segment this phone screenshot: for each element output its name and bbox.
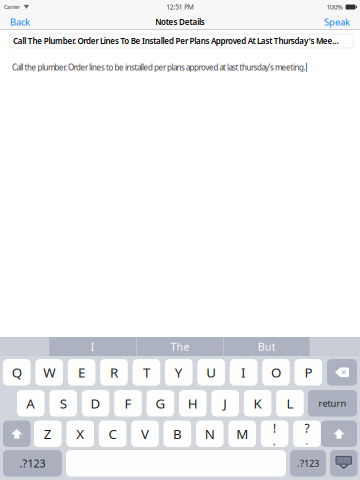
staticText: B <box>173 425 182 443</box>
staticText: Q <box>12 363 22 381</box>
button[interactable]: .?123 <box>290 450 326 476</box>
button[interactable]: I <box>230 359 257 385</box>
button[interactable]: O <box>262 359 290 385</box>
staticText: C <box>109 425 117 443</box>
staticText: ! <box>273 420 276 436</box>
button[interactable]: B <box>164 420 191 447</box>
staticText: A <box>26 394 35 412</box>
button[interactable]: A <box>17 390 45 416</box>
staticText: .?123 <box>297 457 319 469</box>
button[interactable]: R <box>100 359 128 385</box>
staticText: W <box>43 363 55 381</box>
button[interactable]: L <box>276 390 304 416</box>
button[interactable]: Y <box>165 359 193 385</box>
staticText: I <box>241 363 246 381</box>
button[interactable]: Speak <box>320 13 354 31</box>
button[interactable]: Shift <box>3 420 31 447</box>
staticText: , <box>273 435 276 447</box>
button[interactable]: E <box>68 359 95 385</box>
staticText: U <box>206 363 216 381</box>
staticText: E <box>78 363 85 381</box>
staticText: T <box>143 363 150 381</box>
staticText: .?123 <box>19 456 45 470</box>
staticText: S <box>60 394 67 412</box>
staticText: ? <box>304 420 309 436</box>
button[interactable]: Back <box>6 13 34 31</box>
button[interactable]: P <box>295 359 322 385</box>
staticText: Y <box>175 363 183 381</box>
button[interactable]: .?123 <box>3 450 62 476</box>
button[interactable]: F <box>114 390 142 416</box>
button[interactable]: U <box>197 359 225 385</box>
staticText: Back <box>10 16 30 28</box>
staticText: D <box>91 394 101 412</box>
button[interactable]: H <box>179 390 207 416</box>
staticText: . <box>305 435 308 447</box>
button[interactable]: J <box>211 390 239 416</box>
staticText: Notes Details <box>155 17 205 27</box>
button[interactable]: But <box>224 337 310 356</box>
staticText: Call The Plumber. Order Lines To Be Inst… <box>13 36 339 46</box>
staticText: H <box>188 394 198 412</box>
button[interactable]: Z <box>34 420 62 447</box>
button[interactable]: The <box>137 337 223 356</box>
staticText: 12:51 PM <box>166 3 194 11</box>
staticText: Z <box>44 425 52 443</box>
button[interactable]: V <box>131 420 159 447</box>
button[interactable]: X <box>66 420 94 447</box>
staticText: L <box>286 394 293 412</box>
staticText: N <box>205 425 215 443</box>
staticText: K <box>254 394 262 412</box>
button[interactable]: Q <box>3 359 31 385</box>
staticText: M <box>236 425 248 443</box>
button[interactable]: C <box>99 420 126 447</box>
staticText: I <box>91 339 95 354</box>
button[interactable]: ! <box>261 420 288 447</box>
staticText: return <box>318 397 346 409</box>
button[interactable]: Shift <box>321 420 357 447</box>
button[interactable]: D <box>82 390 109 416</box>
button[interactable]: Hide Keyboard <box>330 450 358 476</box>
staticText: O <box>271 363 281 381</box>
button[interactable]: ? <box>293 420 321 447</box>
staticText: V <box>141 425 149 443</box>
button[interactable]: M <box>228 420 256 447</box>
button[interactable]: N <box>196 420 224 447</box>
button[interactable]: S <box>49 390 77 416</box>
staticText: P <box>304 363 312 381</box>
staticText: J <box>223 394 227 412</box>
staticText: The <box>170 339 189 354</box>
staticText: 100% <box>326 3 343 11</box>
button[interactable]: K <box>244 390 271 416</box>
button[interactable]: return <box>308 390 357 416</box>
button[interactable]: W <box>35 359 63 385</box>
staticText: But <box>258 339 276 354</box>
button[interactable]: Delete <box>327 359 357 385</box>
staticText: Call the plumber. Order lines to be inst… <box>12 62 305 73</box>
staticText: R <box>110 363 118 381</box>
staticText: X <box>76 425 84 443</box>
button[interactable]: T <box>133 359 160 385</box>
staticText: × <box>341 366 346 378</box>
staticText: Carrier <box>4 3 20 11</box>
button[interactable]: G <box>147 390 174 416</box>
staticText: F <box>124 394 131 412</box>
button[interactable]: I <box>49 337 136 356</box>
staticText: G <box>155 394 165 412</box>
staticText: Speak <box>324 16 350 28</box>
